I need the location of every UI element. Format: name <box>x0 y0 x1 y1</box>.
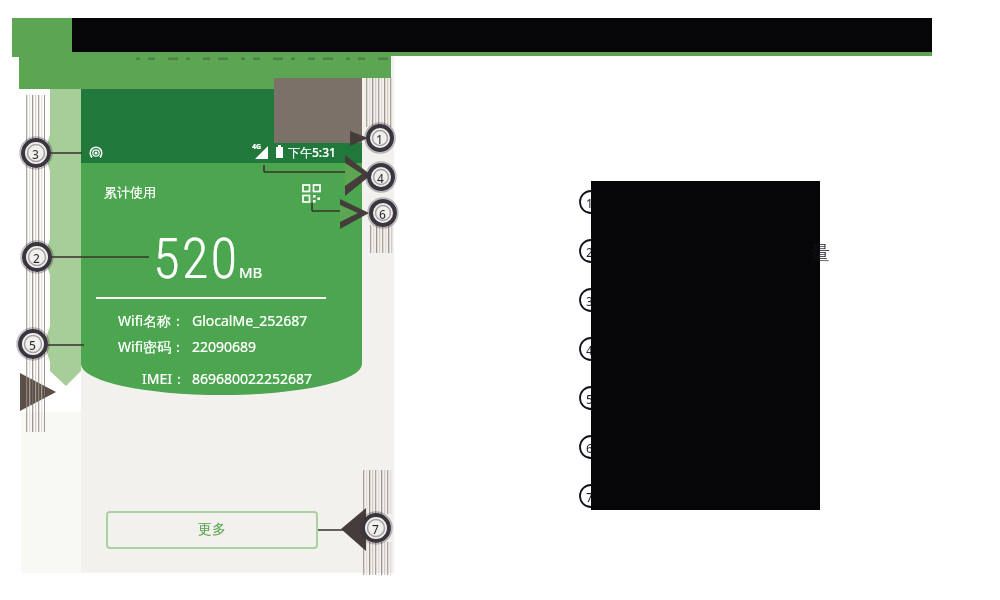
staticText: 2 <box>33 250 40 266</box>
staticText: 869680022252687 <box>192 369 313 388</box>
staticText: 3 <box>586 293 593 309</box>
staticText: 6 <box>586 440 593 456</box>
staticText: 3 <box>32 146 39 162</box>
staticText: 6 <box>379 206 386 222</box>
staticText: Wifi密码： <box>118 337 186 356</box>
staticText: MB <box>239 262 263 282</box>
staticText: 2 <box>586 244 593 260</box>
staticText: 7 <box>586 489 593 505</box>
staticText: 4 <box>377 170 384 186</box>
staticText: 520 <box>153 227 240 291</box>
staticText: Wifi名称： <box>118 311 186 330</box>
staticText: 5 <box>586 391 593 407</box>
staticText: 5 <box>29 337 36 353</box>
staticText: 1 <box>376 131 383 147</box>
staticText: IMEI： <box>142 369 186 388</box>
staticText: 4G <box>252 142 262 152</box>
staticText: 量 <box>810 241 830 266</box>
staticText: 4 <box>586 342 593 358</box>
staticText: 累计使用 <box>104 184 156 200</box>
staticText: GlocalMe_252687 <box>192 311 308 330</box>
staticText: 更多 <box>198 521 226 539</box>
staticText: 22090689 <box>192 337 257 356</box>
staticText: 7 <box>372 521 379 537</box>
staticText: 下午5:31 <box>288 144 336 160</box>
staticText: 1 <box>586 195 593 211</box>
button[interactable]: 更多 <box>106 511 318 549</box>
